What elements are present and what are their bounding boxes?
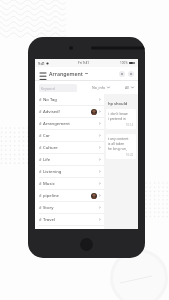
staticText: # <box>39 193 42 198</box>
staticText: i pretend in <box>108 116 126 120</box>
button[interactable]: # <box>35 190 104 201</box>
button[interactable]: i don't know <box>106 109 136 129</box>
button[interactable]: Keyword <box>39 84 77 92</box>
staticText: Arrangement <box>43 121 70 127</box>
staticText: # <box>39 181 42 186</box>
staticText: # <box>39 121 42 126</box>
staticText: # <box>39 217 42 222</box>
staticText: Car <box>43 133 50 139</box>
staticText: he long run, <box>108 146 127 150</box>
staticText: hp should <box>108 101 128 106</box>
button[interactable]: Profile <box>128 71 134 77</box>
staticText: Keyword <box>41 86 55 91</box>
staticText: Listening <box>43 169 62 175</box>
button[interactable]: No_info <box>92 85 110 90</box>
staticText: Music <box>43 181 55 187</box>
staticText: # <box>39 145 42 150</box>
button[interactable]: # <box>35 106 104 117</box>
staticText: No Tag <box>43 97 57 103</box>
staticText: Story <box>43 205 54 211</box>
staticText: Arrangement <box>49 70 83 77</box>
staticText: t any content <box>108 136 129 140</box>
button[interactable]: # <box>35 166 104 177</box>
button[interactable]: # <box>35 130 104 141</box>
button[interactable]: # <box>35 118 104 129</box>
button[interactable]: # <box>35 178 104 189</box>
button[interactable]: # <box>35 214 104 225</box>
staticText: 9:41 <box>38 61 45 66</box>
button[interactable]: Settings <box>119 71 125 77</box>
staticText: No_info <box>92 85 106 90</box>
button[interactable]: # <box>35 154 104 165</box>
staticText: Life <box>43 157 51 163</box>
button[interactable]: Arrangement <box>49 70 88 77</box>
staticText: # <box>39 97 42 102</box>
staticText: 10:22 <box>126 153 134 157</box>
staticText: # <box>39 169 42 174</box>
button[interactable]: # <box>35 142 104 153</box>
staticText: i don't know <box>108 111 128 115</box>
staticText: # <box>39 157 42 162</box>
staticText: 100% <box>120 61 128 65</box>
button[interactable]: # <box>35 94 104 105</box>
staticText: Advised! <box>43 109 60 115</box>
staticText: is all taken <box>108 141 125 145</box>
staticText: # <box>39 109 42 114</box>
staticText: All <box>125 85 130 90</box>
staticText: Culture <box>43 145 58 151</box>
staticText: Travel <box>43 217 55 223</box>
staticText: 10:14 <box>126 123 134 127</box>
staticText: # <box>39 133 42 138</box>
button[interactable]: t any content <box>106 134 136 159</box>
button[interactable]: Menu <box>39 70 47 78</box>
staticText: Fri 9:41 <box>78 61 90 65</box>
button[interactable]: All <box>125 85 134 90</box>
staticText: pipeline <box>43 193 60 199</box>
button[interactable]: Home <box>80 238 93 251</box>
button[interactable]: # <box>35 202 104 213</box>
staticText: # <box>39 205 42 210</box>
